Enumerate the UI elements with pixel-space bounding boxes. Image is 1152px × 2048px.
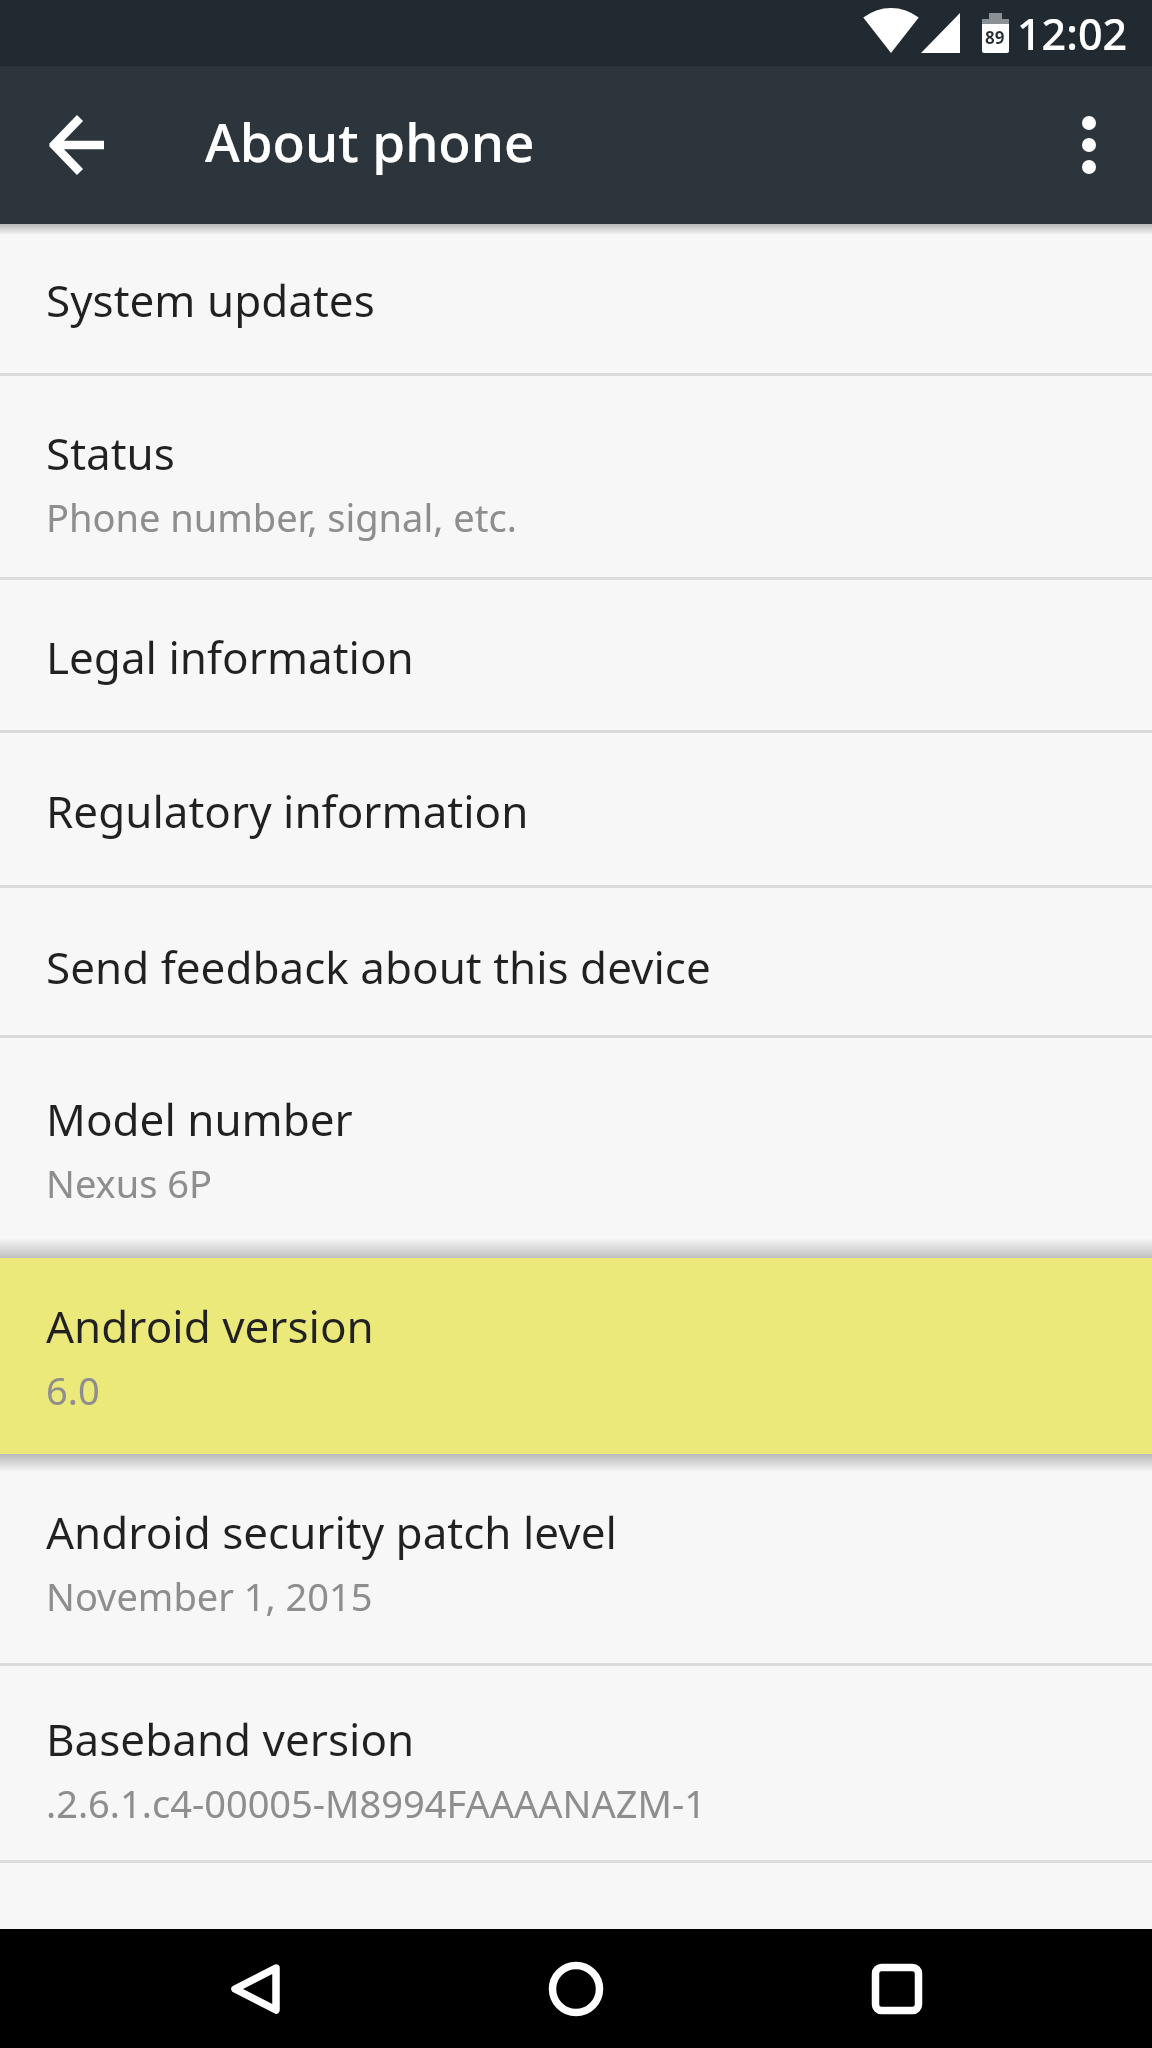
staticText: Regulatory information xyxy=(46,781,529,841)
button[interactable]: Status xyxy=(0,376,1152,580)
staticText: Send feedback about this device xyxy=(46,937,711,997)
staticText: 89 xyxy=(985,26,1005,49)
button[interactable]: System updates xyxy=(0,224,1152,376)
button[interactable] xyxy=(1052,95,1152,195)
button[interactable]: Send feedback about this device xyxy=(0,888,1152,1038)
button[interactable]: Android security patch level xyxy=(0,1472,1152,1666)
staticText: About phone xyxy=(205,105,535,177)
button[interactable] xyxy=(842,1934,952,2044)
button[interactable]: Baseband version xyxy=(0,1666,1152,1863)
staticText: 12:02 xyxy=(1017,4,1128,63)
button[interactable]: Legal information xyxy=(0,580,1152,733)
staticText: November 1, 2015 xyxy=(46,1570,373,1622)
button[interactable]: Regulatory information xyxy=(0,733,1152,888)
staticText: System updates xyxy=(46,270,375,330)
staticText: Phone number, signal, etc. xyxy=(46,491,517,543)
button[interactable] xyxy=(521,1934,631,2044)
staticText: Android version xyxy=(46,1296,374,1356)
button[interactable]: Android version xyxy=(0,1258,1152,1454)
staticText: Nexus 6P xyxy=(46,1157,212,1209)
staticText: 6.0 xyxy=(46,1364,100,1416)
button[interactable]: Model number xyxy=(0,1038,1152,1238)
staticText: Android security patch level xyxy=(46,1502,617,1562)
button[interactable] xyxy=(200,1934,310,2044)
staticText: Baseband version xyxy=(46,1709,415,1769)
button[interactable] xyxy=(0,100,90,190)
staticText: .2.6.1.c4-00005-M8994FAAAANAZM-1 xyxy=(46,1777,706,1829)
staticText: Status xyxy=(46,423,175,483)
staticText: Legal information xyxy=(46,627,414,687)
staticText: Model number xyxy=(46,1089,353,1149)
